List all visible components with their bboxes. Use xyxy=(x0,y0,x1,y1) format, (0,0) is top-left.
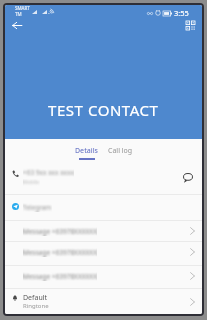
staticText: Default xyxy=(23,293,48,303)
staticText: Details xyxy=(75,146,99,156)
staticText: SMART xyxy=(15,5,30,11)
staticText: Message +63978XXXXXX xyxy=(23,227,97,236)
button[interactable]: Details xyxy=(69,139,105,163)
button[interactable]: Message +63978XXXXXX xyxy=(5,266,202,288)
staticText: TEST CONTACT xyxy=(48,100,159,120)
button[interactable]: Back xyxy=(6,14,28,36)
staticText: Ringtone xyxy=(23,302,49,310)
button[interactable]: Default xyxy=(5,289,202,314)
staticText: Telegram xyxy=(23,203,52,212)
button[interactable]: +63 9xx xxx xxxx xyxy=(5,163,202,194)
staticText: TM xyxy=(15,11,22,16)
staticText: 3:55 xyxy=(174,8,189,18)
button[interactable]: Telegram xyxy=(5,195,202,220)
button[interactable]: Call log xyxy=(102,139,138,163)
staticText: Message +63978XXXXXX xyxy=(23,248,97,257)
button[interactable]: Message +63978XXXXXX xyxy=(5,221,202,241)
staticText: Mobile xyxy=(23,179,40,186)
button[interactable]: Send message xyxy=(180,170,196,186)
button[interactable]: QR code xyxy=(180,15,200,35)
staticText: Call log xyxy=(108,146,133,156)
button[interactable]: Message +63978XXXXXX xyxy=(5,242,202,265)
staticText: +63 9xx xxx xxxx xyxy=(23,168,74,177)
staticText: Message +63978XXXXXX xyxy=(23,272,97,281)
